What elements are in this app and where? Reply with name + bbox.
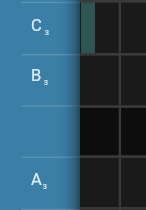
staticText: C	[31, 16, 42, 35]
button[interactable]: A	[31, 170, 51, 190]
staticText: A	[31, 170, 42, 189]
staticText: B	[31, 66, 42, 85]
button[interactable]: B	[31, 66, 51, 86]
staticText: 3	[45, 29, 49, 37]
staticText: 3	[44, 79, 48, 87]
staticText: 3	[43, 183, 47, 191]
button[interactable]: C	[31, 16, 51, 36]
